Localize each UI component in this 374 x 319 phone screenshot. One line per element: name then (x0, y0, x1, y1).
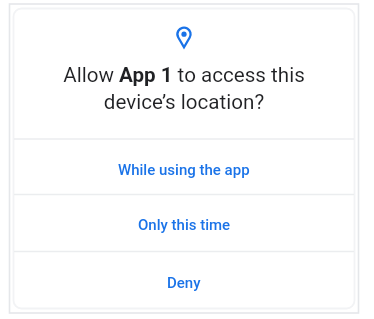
staticText: Deny (167, 274, 201, 292)
button[interactable]: Deny (13, 252, 355, 310)
button[interactable]: While using the app (13, 139, 355, 195)
staticText: While using the app (118, 161, 250, 179)
button[interactable]: Only this time (13, 195, 355, 252)
staticText: Only this time (138, 216, 231, 234)
staticText: Allow App 1 to access this device’s loca… (63, 63, 305, 114)
